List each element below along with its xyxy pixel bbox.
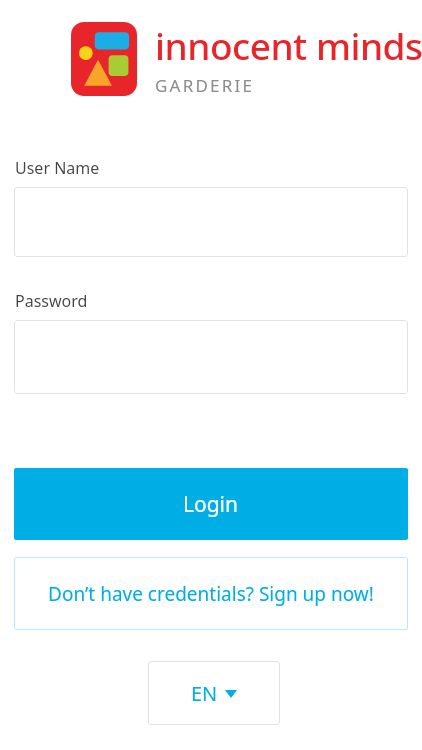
button[interactable] [14, 320, 408, 394]
button[interactable]: Login [14, 468, 408, 540]
other: Innocent Minds Garderie logo [71, 22, 137, 96]
staticText: innocent minds [155, 20, 422, 70]
staticText: GARDERIE [155, 74, 255, 97]
button[interactable]: Don’t have credentials? Sign up now! [14, 557, 408, 630]
staticText: Don’t have credentials? Sign up now! [48, 581, 374, 607]
button[interactable] [14, 187, 408, 257]
button[interactable]: Select language [148, 661, 280, 725]
staticText: User Name [15, 157, 100, 179]
staticText: EN [191, 680, 218, 707]
staticText: Password [15, 290, 88, 312]
staticText: Login [183, 490, 239, 519]
